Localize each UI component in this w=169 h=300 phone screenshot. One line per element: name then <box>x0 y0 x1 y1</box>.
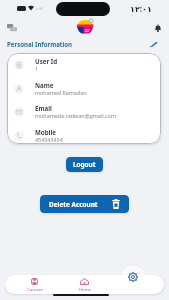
staticText: User Id <box>35 57 58 65</box>
staticText: Email <box>35 104 52 112</box>
staticText: Courses <box>27 287 43 293</box>
staticText: mohamed Ramadan <box>35 89 87 96</box>
button[interactable]: User Id <box>7 57 161 72</box>
button[interactable]: Email <box>7 104 161 119</box>
button[interactable]: Home <box>73 278 96 294</box>
staticText: Home <box>79 287 91 293</box>
staticText: 454545454 <box>35 136 63 143</box>
button[interactable]: Logout <box>66 157 103 172</box>
button[interactable]: Delete Account <box>40 195 129 213</box>
button[interactable]: Name <box>7 81 161 96</box>
staticText: muhameda.radwan@gmail.com <box>35 112 116 119</box>
staticText: Personal Information <box>7 40 73 48</box>
staticText: ۱۲:۰۱ <box>130 3 152 14</box>
staticText: Delete Account <box>49 200 98 209</box>
staticText: Mobile <box>35 128 57 136</box>
button[interactable]: Edit <box>147 38 160 50</box>
button[interactable]: Notifications <box>150 20 166 35</box>
button[interactable]: Mobile <box>7 128 161 143</box>
staticText: Name <box>35 81 54 89</box>
staticText: 1 <box>35 65 39 72</box>
staticText: Logout <box>73 160 96 169</box>
button[interactable]: Courses <box>23 278 46 294</box>
button[interactable]: Settings <box>124 268 142 286</box>
button[interactable]: Switch account <box>3 20 21 36</box>
